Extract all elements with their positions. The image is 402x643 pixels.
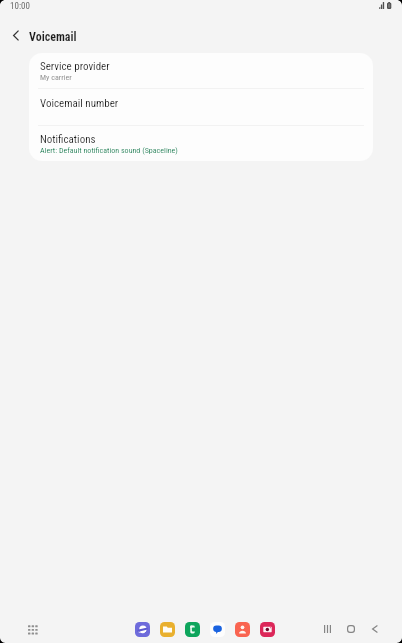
button[interactable]: Home [346, 621, 356, 637]
staticText: Voicemail [29, 30, 77, 44]
button[interactable]: Notifications [29, 126, 373, 161]
button[interactable]: Back [370, 621, 380, 637]
staticText: Alert: Default notification sound (Space… [40, 146, 178, 155]
button[interactable]: Navigate up [4, 24, 27, 47]
button[interactable]: Contacts [235, 622, 250, 637]
button[interactable]: Service provider [29, 53, 373, 88]
button[interactable]: Voicemail number [29, 89, 373, 125]
button[interactable]: Phone [185, 622, 200, 637]
staticText: 10:00 [10, 1, 30, 12]
button[interactable]: Internet [135, 622, 150, 637]
button[interactable]: Camera [260, 622, 275, 637]
staticText: Notifications [40, 133, 96, 146]
staticText: My carrier [40, 73, 72, 82]
button[interactable]: Apps [21, 618, 43, 640]
staticText: Service provider [40, 60, 110, 73]
button[interactable]: Recent apps [322, 621, 332, 637]
button[interactable]: My Files [160, 622, 175, 637]
button[interactable]: Messages [210, 622, 225, 637]
staticText: Voicemail number [40, 97, 119, 110]
